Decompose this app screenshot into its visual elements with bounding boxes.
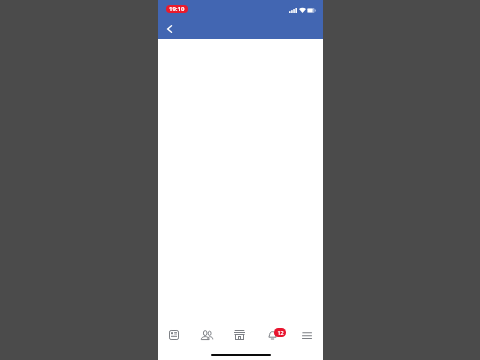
staticText: 12 xyxy=(277,329,284,336)
button[interactable]: Home xyxy=(157,321,190,347)
button[interactable]: Menu xyxy=(289,321,322,347)
staticText: 19:10 xyxy=(169,5,185,13)
button[interactable]: Back xyxy=(159,19,179,39)
button[interactable]: Friends xyxy=(190,321,223,347)
button[interactable]: Notifications xyxy=(256,321,289,347)
button[interactable]: Marketplace xyxy=(223,321,256,347)
